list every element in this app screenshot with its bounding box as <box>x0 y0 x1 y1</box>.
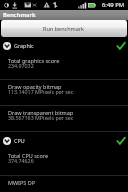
button[interactable]: Collapse Graphic <box>0 37 128 54</box>
button[interactable]: Draw transparent bitmap <box>0 106 128 132</box>
staticText: Draw transparent bitmap <box>8 109 74 116</box>
staticText: Total graphics score <box>8 57 60 64</box>
other: Completed <box>117 137 125 145</box>
staticText: Benchmark <box>3 11 36 19</box>
staticText: 6:49 PM <box>102 1 125 9</box>
staticText: Total CPU score <box>8 152 49 159</box>
button[interactable]: Collapse CPU <box>0 132 128 149</box>
staticText: 113.14017 MPixels per sec <box>8 88 74 95</box>
button[interactable]: Total graphics score <box>0 54 128 80</box>
other: Collapse CPU <box>3 137 11 145</box>
button[interactable]: Draw opacity bitmap <box>0 80 128 106</box>
other: Collapse Graphic <box>3 42 11 50</box>
staticText: MWIPS DP <box>8 179 36 186</box>
staticText: Run benchmark <box>43 25 85 32</box>
staticText: 38.567163 MPixels per sec <box>8 114 74 121</box>
staticText: CPU <box>14 137 25 144</box>
staticText: Graphic <box>14 42 34 49</box>
button[interactable]: Total CPU score <box>0 149 128 176</box>
button[interactable]: MWIPS DP <box>0 176 128 192</box>
staticText: 374.74626 <box>8 157 34 164</box>
button[interactable]: Run benchmark <box>1 20 127 37</box>
staticText: Draw opacity bitmap <box>8 83 62 90</box>
other: Completed <box>117 42 125 50</box>
staticText: 234.97032 <box>8 62 34 69</box>
